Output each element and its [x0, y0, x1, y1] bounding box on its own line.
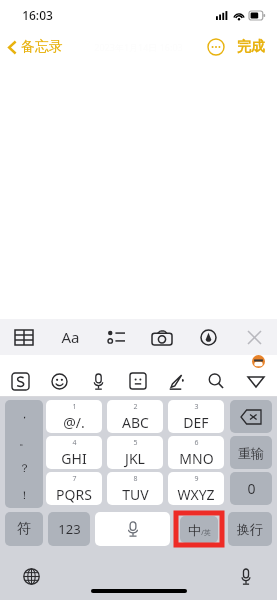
button[interactable]: 1: [46, 400, 102, 433]
button[interactable]: 符: [5, 512, 43, 546]
button[interactable]: 8: [107, 472, 163, 505]
button[interactable]: Text format: [47, 319, 93, 355]
button[interactable]: Search: [196, 365, 235, 397]
button[interactable]: Handwriting: [157, 365, 196, 397]
staticText: 备忘录: [21, 38, 63, 56]
staticText: 重输: [238, 445, 264, 461]
staticText: 中: [188, 522, 201, 538]
button[interactable]: Space, voice input: [95, 512, 170, 546]
staticText: 。: [19, 434, 30, 448]
button[interactable]: ！: [5, 481, 43, 508]
staticText: 3: [194, 402, 199, 412]
button[interactable]: 2: [107, 400, 163, 433]
staticText: 0: [247, 479, 256, 498]
button[interactable]: 中: [180, 516, 218, 543]
staticText: 完成: [237, 38, 265, 56]
button[interactable]: 5: [107, 436, 163, 469]
staticText: 2: [133, 402, 138, 412]
staticText: DEF: [183, 413, 209, 432]
staticText: 123: [58, 520, 81, 538]
staticText: ，: [19, 407, 30, 421]
button[interactable]: Table: [0, 319, 47, 355]
staticText: 5: [133, 438, 138, 448]
staticText: PQRS: [56, 485, 92, 504]
button[interactable]: Close: [231, 319, 277, 355]
staticText: @/.: [63, 413, 85, 432]
button[interactable]: Sogou input: [0, 365, 40, 397]
button[interactable]: 6: [168, 436, 224, 469]
staticText: TUV: [122, 485, 149, 504]
staticText: JKL: [125, 449, 145, 468]
button[interactable]: 3: [168, 400, 224, 433]
button[interactable]: Collapse keyboard: [235, 365, 277, 397]
other: Account avatar: [252, 355, 265, 368]
button[interactable]: 123: [48, 512, 90, 546]
button[interactable]: 。: [5, 427, 43, 454]
button[interactable]: 备忘录: [0, 34, 73, 60]
staticText: 4: [72, 438, 77, 448]
button[interactable]: Delete: [230, 400, 272, 433]
button[interactable]: 换行: [228, 512, 272, 546]
button[interactable]: 完成: [235, 34, 267, 60]
staticText: 9: [194, 474, 199, 484]
staticText: 换行: [237, 521, 263, 537]
button[interactable]: Voice input: [233, 563, 259, 589]
staticText: WXYZ: [177, 485, 215, 504]
button[interactable]: Camera: [139, 319, 185, 355]
staticText: 6: [194, 438, 199, 448]
button[interactable]: ？: [5, 454, 43, 481]
button[interactable]: 7: [46, 472, 102, 505]
button[interactable]: ，: [5, 400, 43, 427]
staticText: 符: [17, 520, 31, 538]
button[interactable]: More options: [207, 38, 225, 56]
button[interactable]: 重输: [230, 436, 272, 469]
staticText: /英: [201, 528, 211, 538]
staticText: GHI: [61, 449, 87, 468]
button[interactable]: Switch language: [18, 563, 44, 589]
staticText: ！: [19, 488, 30, 502]
button[interactable]: 4: [46, 436, 102, 469]
staticText: MNO: [179, 449, 214, 468]
staticText: 1: [72, 402, 77, 412]
staticText: Aa: [61, 327, 80, 347]
staticText: 7: [72, 474, 77, 484]
button[interactable]: Markup: [185, 319, 231, 355]
staticText: 16:03: [22, 7, 53, 23]
button[interactable]: Checklist: [93, 319, 139, 355]
staticText: 8: [133, 474, 138, 484]
staticText: ABC: [122, 413, 149, 432]
staticText: ？: [19, 461, 30, 475]
button[interactable]: Sticker: [118, 365, 157, 397]
button[interactable]: Emoji: [40, 365, 79, 397]
button[interactable]: 9: [168, 472, 224, 505]
button[interactable]: 0: [230, 472, 272, 505]
button[interactable]: Voice input: [79, 365, 118, 397]
